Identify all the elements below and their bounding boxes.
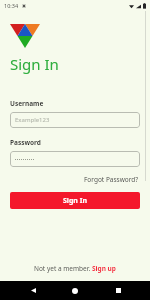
staticText: 10:34 — [4, 2, 19, 9]
button[interactable]: Sign In — [10, 192, 140, 209]
button[interactable]: Back — [23, 281, 43, 300]
staticText: Sign In — [63, 196, 88, 206]
staticText: Username — [10, 99, 44, 108]
button[interactable]: Recent apps — [108, 281, 128, 300]
staticText: Sign up — [92, 264, 116, 273]
staticText: Example123 — [15, 116, 50, 124]
button[interactable]: Forgot Password? — [83, 174, 140, 185]
button[interactable] — [10, 151, 140, 167]
staticText: Not yet a member. — [34, 264, 92, 273]
button[interactable]: Home — [65, 281, 85, 300]
button[interactable]: Example123 — [10, 112, 140, 128]
staticText: Password — [10, 138, 41, 147]
button[interactable]: Sign up — [92, 264, 116, 273]
staticText: Forgot Password? — [84, 175, 139, 184]
staticText: Sign In — [10, 54, 59, 74]
